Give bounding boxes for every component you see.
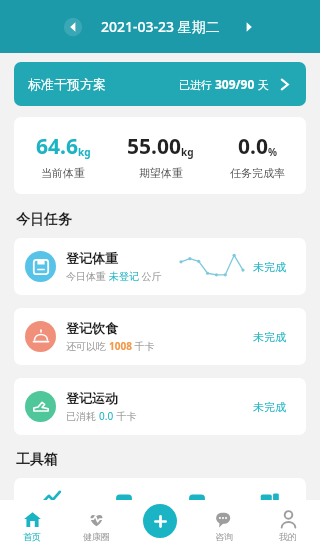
staticText: 工具箱 <box>16 451 58 469</box>
staticText: kg <box>78 145 91 159</box>
staticText: 0.0 <box>238 132 268 161</box>
staticText: % <box>268 145 278 159</box>
staticText: 任务完成率 <box>230 166 285 180</box>
staticText: 55.00 <box>127 132 181 161</box>
staticText: 公斤 <box>139 269 162 283</box>
staticText: kg <box>181 145 194 159</box>
staticText: 0.0 <box>99 409 114 423</box>
staticText: 天 <box>255 77 269 92</box>
button[interactable]: Tool 4 <box>233 478 306 538</box>
staticText: 我的 <box>279 531 297 542</box>
staticText: 309/90 <box>215 76 255 92</box>
staticText: 64.6 <box>36 132 78 161</box>
button[interactable]: 标准干预方案 <box>14 62 306 106</box>
button[interactable]: 咨询 <box>192 500 256 551</box>
button[interactable]: Next day <box>234 12 264 42</box>
staticText: 登记体重 <box>66 250 118 266</box>
button[interactable]: 健康圈 <box>64 500 128 551</box>
staticText: 期望体重 <box>139 166 183 180</box>
staticText: 还可以吃 <box>66 339 109 353</box>
staticText: 健康圈 <box>83 531 110 542</box>
staticText: 未完成 <box>253 400 295 414</box>
staticText: 未完成 <box>253 330 295 344</box>
staticText: 千卡 <box>114 409 137 423</box>
button[interactable]: 我的 <box>256 500 320 551</box>
staticText: 千卡 <box>132 339 155 353</box>
staticText: 当前体重 <box>41 166 85 180</box>
button[interactable]: Tool 1 <box>14 478 87 538</box>
button[interactable]: Add record <box>143 504 177 538</box>
button[interactable]: 首页 <box>0 500 64 551</box>
staticText: 未登记 <box>109 270 139 283</box>
button[interactable]: Tool 2 <box>87 478 160 538</box>
button[interactable]: 登记体重 <box>14 238 306 295</box>
button[interactable]: 登记运动 <box>14 378 306 435</box>
staticText: 今日体重 <box>66 269 109 283</box>
staticText: 未完成 <box>253 260 295 274</box>
staticText: 2021-03-23 星期二 <box>101 17 220 36</box>
staticText: 标准干预方案 <box>28 76 106 92</box>
staticText: 已消耗 <box>66 409 99 423</box>
staticText: 登记饮食 <box>66 320 118 336</box>
staticText: 今日任务 <box>16 211 72 229</box>
staticText: 已进行 <box>179 77 215 92</box>
staticText: 咨询 <box>215 531 233 542</box>
button[interactable]: 登记饮食 <box>14 308 306 365</box>
staticText: 1008 <box>109 339 132 353</box>
button[interactable]: Tool 3 <box>160 478 233 538</box>
staticText: 登记运动 <box>66 390 118 406</box>
staticText: 首页 <box>23 531 41 542</box>
button[interactable]: Previous day <box>58 12 88 42</box>
